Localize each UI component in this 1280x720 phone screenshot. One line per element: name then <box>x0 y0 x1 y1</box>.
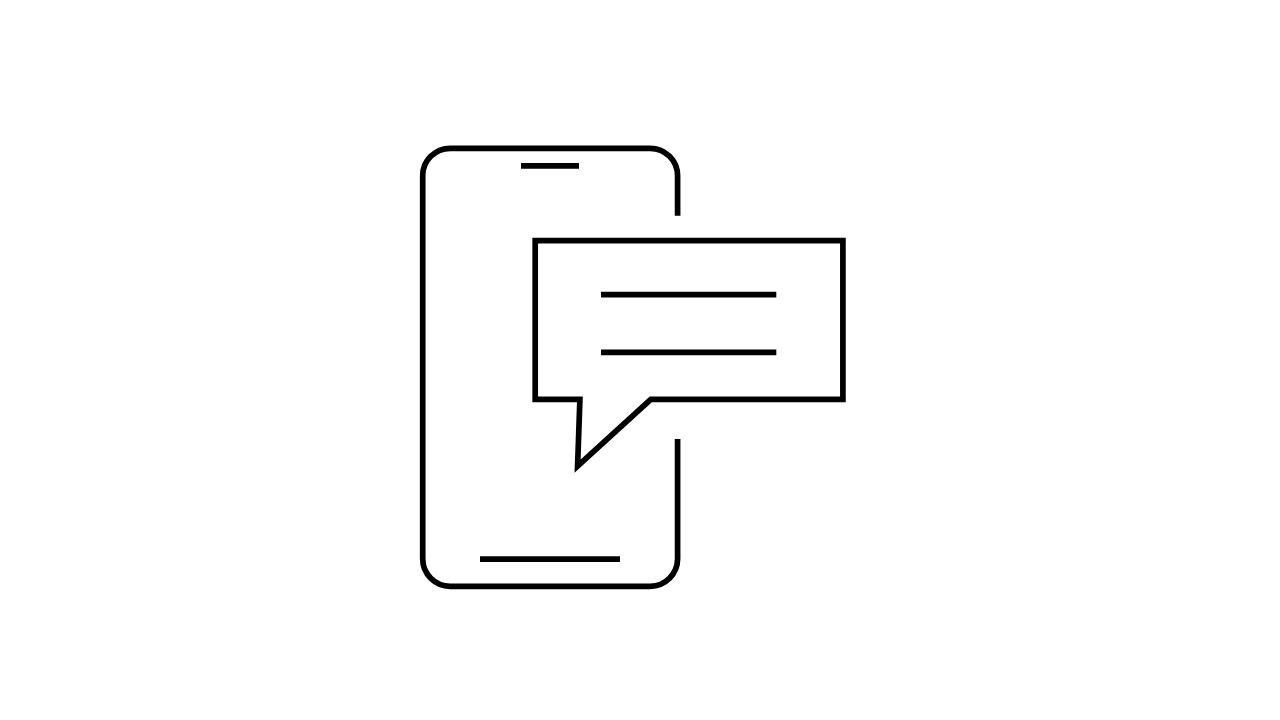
button[interactable]: Phone with chat message illustration <box>0 0 1280 720</box>
